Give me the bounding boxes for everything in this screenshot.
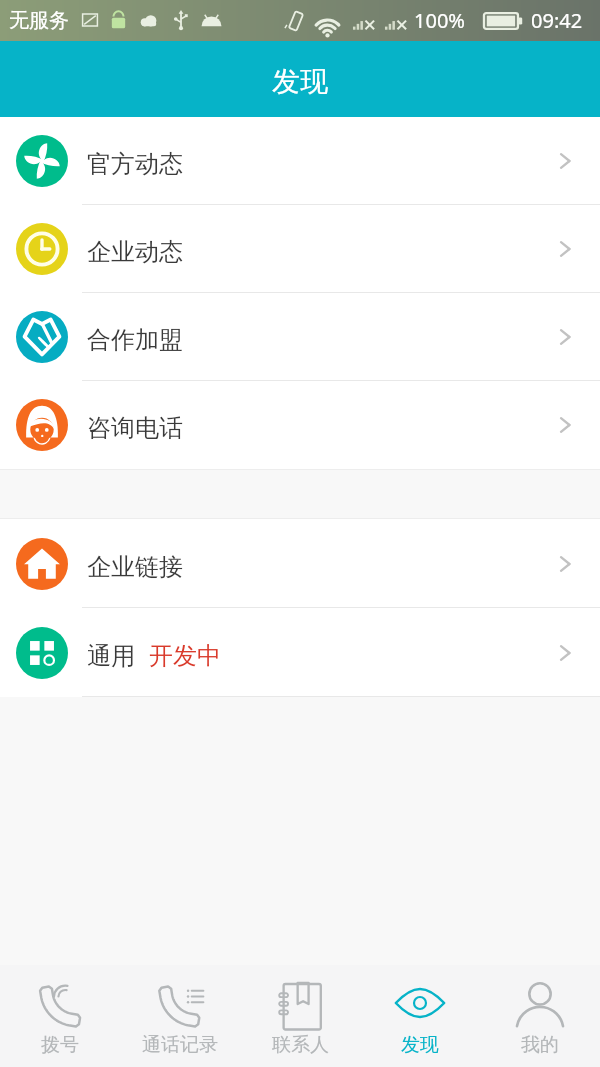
staticText: 100% — [414, 7, 465, 34]
staticText: 发现 — [401, 1033, 439, 1057]
staticText: 发现 — [272, 64, 328, 99]
staticText: 通用 — [87, 641, 135, 671]
button[interactable]: 咨询电话 — [0, 381, 600, 469]
staticText: 开发中 — [149, 641, 221, 671]
staticText: 企业动态 — [87, 237, 183, 267]
staticText: 我的 — [521, 1033, 559, 1057]
button[interactable]: 通话记录 — [120, 965, 240, 1067]
staticText: 09:42 — [531, 7, 583, 34]
button[interactable]: 企业链接 — [0, 519, 600, 608]
button[interactable]: 通用 — [0, 608, 600, 697]
staticText: 无服务 — [9, 8, 69, 33]
staticText: 联系人 — [272, 1033, 329, 1057]
button[interactable]: 官方动态 — [0, 117, 600, 205]
staticText: 官方动态 — [87, 149, 183, 179]
button[interactable]: 联系人 — [240, 965, 360, 1067]
button[interactable]: 拨号 — [0, 965, 120, 1067]
staticText: 合作加盟 — [87, 325, 183, 355]
button[interactable]: 合作加盟 — [0, 293, 600, 381]
staticText: 拨号 — [41, 1033, 79, 1057]
button[interactable]: 企业动态 — [0, 205, 600, 293]
button[interactable]: 我的 — [480, 965, 600, 1067]
staticText: 通话记录 — [142, 1033, 218, 1057]
staticText: 咨询电话 — [87, 413, 183, 443]
button[interactable]: 发现 — [360, 965, 480, 1067]
staticText: 企业链接 — [87, 552, 183, 582]
